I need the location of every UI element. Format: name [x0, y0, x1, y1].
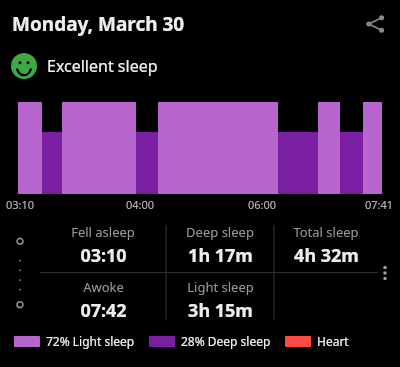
button[interactable]: Fell asleep	[40, 220, 166, 272]
staticText: Excellent sleep	[47, 55, 158, 77]
staticText: Heart	[317, 333, 349, 349]
staticText: 1h 17m	[188, 243, 253, 268]
staticText: 72% Light sleep	[46, 333, 135, 349]
button[interactable]: More options	[372, 260, 398, 286]
staticText: 04:00	[126, 197, 155, 212]
button[interactable]: Total sleep	[274, 220, 378, 272]
button[interactable]: Excellent sleep	[0, 48, 400, 84]
staticText: 03:10	[6, 197, 35, 212]
button[interactable]: Share	[358, 7, 392, 41]
staticText: 28% Deep sleep	[181, 333, 271, 349]
staticText: Light sleep	[187, 278, 254, 296]
button[interactable]: 72% Light sleep	[14, 333, 135, 349]
staticText: 07:42	[80, 298, 127, 323]
staticText: 4h 32m	[294, 243, 359, 268]
staticText: 03:10	[80, 243, 127, 268]
staticText: Total sleep	[293, 223, 359, 241]
button[interactable]: Light sleep	[166, 273, 274, 325]
staticText: Monday, March 30	[12, 11, 185, 37]
staticText: Awoke	[83, 278, 124, 296]
button[interactable]: Deep sleep	[166, 220, 274, 272]
button[interactable]: 28% Deep sleep	[149, 333, 271, 349]
staticText: 07:41	[365, 197, 394, 212]
button[interactable]: Awoke	[40, 273, 166, 325]
button[interactable]: Heart	[285, 333, 349, 349]
staticText: Fell asleep	[71, 223, 135, 241]
staticText: 06:00	[248, 197, 277, 212]
staticText: Deep sleep	[186, 223, 254, 241]
staticText: 3h 15m	[188, 298, 253, 323]
